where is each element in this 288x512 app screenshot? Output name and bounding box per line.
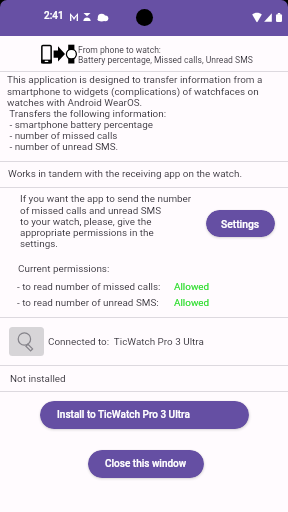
staticText: - to read number of unread SMS:: [17, 297, 159, 309]
button[interactable]: Settings: [206, 210, 275, 237]
staticText: - to read number of missed calls:: [17, 281, 161, 293]
staticText: Allowed: [174, 297, 210, 309]
staticText: This application is designed to transfer…: [7, 74, 263, 152]
staticText: Close this window: [105, 458, 187, 470]
staticText: If you want the app to send the number o…: [20, 193, 192, 249]
staticText: Allowed: [174, 281, 210, 293]
staticText: Current permissions:: [18, 263, 110, 275]
button[interactable]: Close this window: [88, 450, 204, 478]
button[interactable]: Install to TicWatch Pro 3 Ultra: [40, 401, 249, 429]
other: Search for watch: [17, 332, 37, 352]
button[interactable]: Search for watch: [0, 318, 288, 365]
staticText: Connected to: TicWatch Pro 3 Ultra: [48, 336, 204, 348]
staticText: Settings: [221, 218, 260, 230]
staticText: Not installed: [10, 373, 66, 385]
staticText: Works in tandem with the receiving app o…: [8, 168, 243, 180]
staticText: Install to TicWatch Pro 3 Ultra: [57, 409, 190, 421]
staticText: From phone to watch: Battery percentage,…: [78, 45, 253, 65]
staticText: 2:41: [44, 10, 64, 22]
